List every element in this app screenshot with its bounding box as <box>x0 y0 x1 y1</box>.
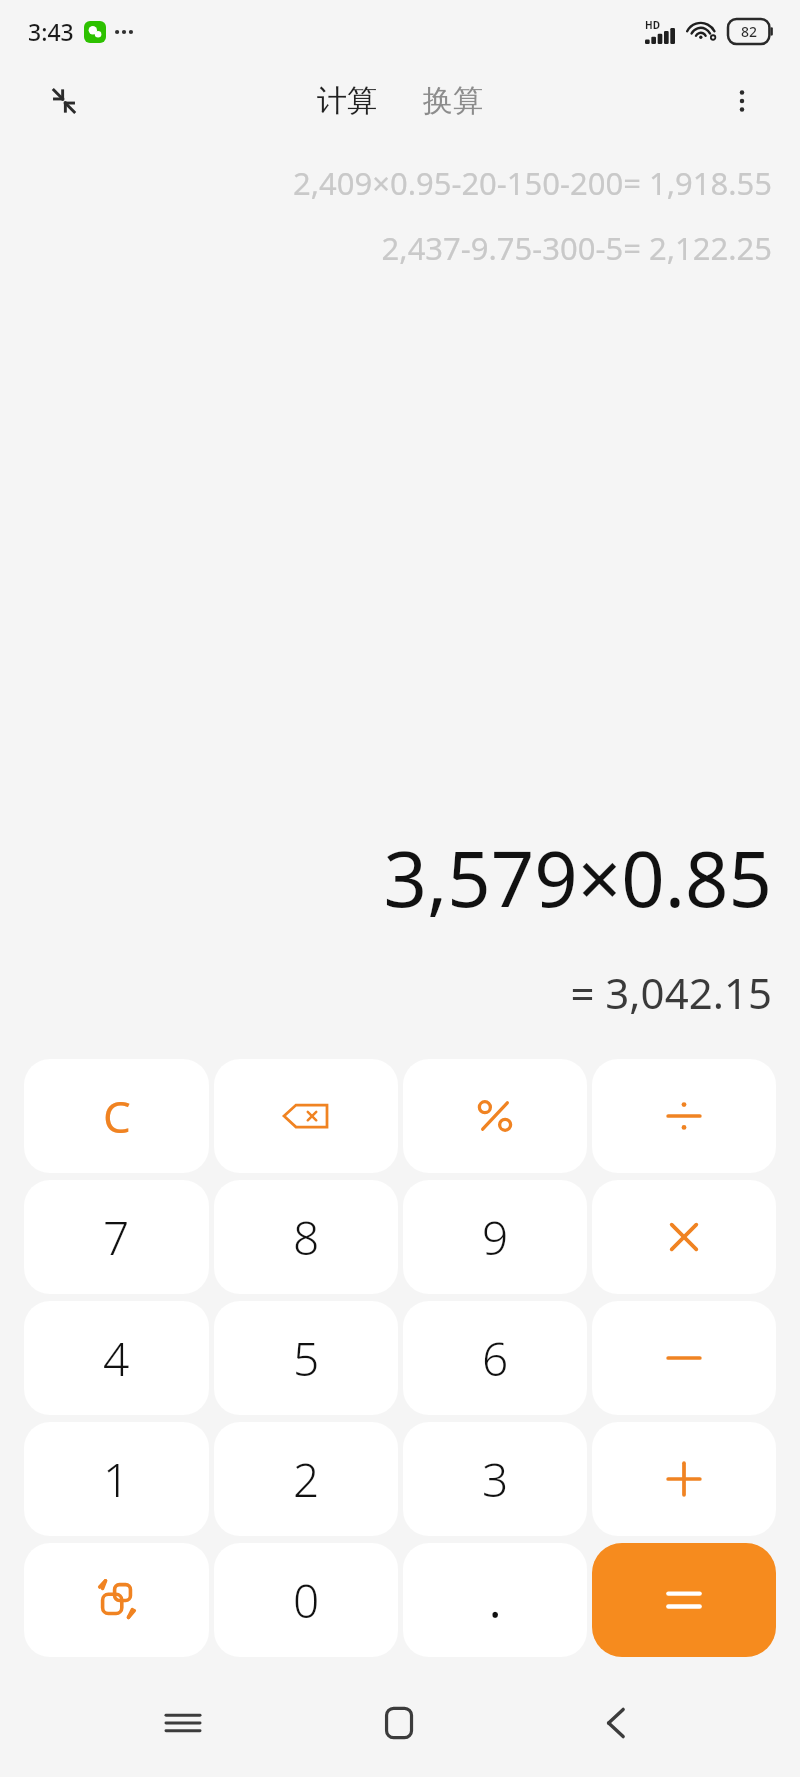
button[interactable]: Plus <box>592 1422 776 1536</box>
staticText: 换算 <box>423 82 483 120</box>
button[interactable]: 2 <box>214 1422 398 1536</box>
staticText: 2 <box>293 1448 320 1511</box>
staticText: 8 <box>293 1206 320 1269</box>
staticText: 82 <box>741 22 758 41</box>
button[interactable]: Scientific <box>24 1543 209 1657</box>
staticText: 1 <box>103 1448 130 1511</box>
button[interactable]: Percent <box>403 1059 587 1173</box>
staticText: 4 <box>103 1327 130 1390</box>
button[interactable]: C <box>24 1059 209 1173</box>
staticText: 7 <box>103 1206 130 1269</box>
button[interactable]: Divide <box>592 1059 776 1173</box>
staticText: HD <box>645 18 660 32</box>
button[interactable]: Equals <box>592 1543 776 1657</box>
button[interactable]: 7 <box>24 1180 209 1294</box>
button[interactable]: 3 <box>403 1422 587 1536</box>
staticText: 3:43 <box>28 16 74 47</box>
button[interactable]: Multiply <box>592 1180 776 1294</box>
button[interactable]: 2,409×0.95-20-150-200= 1,918.55 <box>0 162 772 204</box>
button[interactable]: Home <box>357 1691 443 1755</box>
staticText: 6 <box>482 1327 509 1390</box>
button[interactable]: 8 <box>214 1180 398 1294</box>
button[interactable]: 1 <box>24 1422 209 1536</box>
staticText: C <box>103 1086 131 1146</box>
button[interactable]: 换算 <box>411 76 495 126</box>
button[interactable]: 9 <box>403 1180 587 1294</box>
staticText: 2,409×0.95-20-150-200= 1,918.55 <box>292 162 772 204</box>
button[interactable]: Back <box>574 1691 660 1755</box>
staticText: 3 <box>482 1448 509 1511</box>
staticText: 0 <box>293 1569 320 1632</box>
button[interactable]: 6 <box>403 1301 587 1415</box>
button[interactable]: 2,437-9.75-300-5= 2,122.25 <box>0 227 772 269</box>
staticText: 3,579×0.85 <box>383 826 772 930</box>
button[interactable]: . <box>403 1543 587 1657</box>
staticText: 5 <box>293 1327 320 1390</box>
staticText: . <box>489 1569 502 1632</box>
staticText: 9 <box>482 1206 509 1269</box>
button[interactable]: Backspace <box>214 1059 398 1173</box>
staticText: 2,437-9.75-300-5= 2,122.25 <box>381 227 772 269</box>
button[interactable]: 0 <box>214 1543 398 1657</box>
button[interactable]: 4 <box>24 1301 209 1415</box>
button[interactable]: Recent apps <box>140 1691 226 1755</box>
button[interactable]: More options <box>714 73 770 129</box>
button[interactable]: 5 <box>214 1301 398 1415</box>
button[interactable]: 计算 <box>305 76 389 126</box>
staticText: = 3,042.15 <box>570 964 772 1021</box>
button[interactable]: Collapse <box>36 73 92 129</box>
staticText: 计算 <box>317 82 377 120</box>
button[interactable]: Minus <box>592 1301 776 1415</box>
